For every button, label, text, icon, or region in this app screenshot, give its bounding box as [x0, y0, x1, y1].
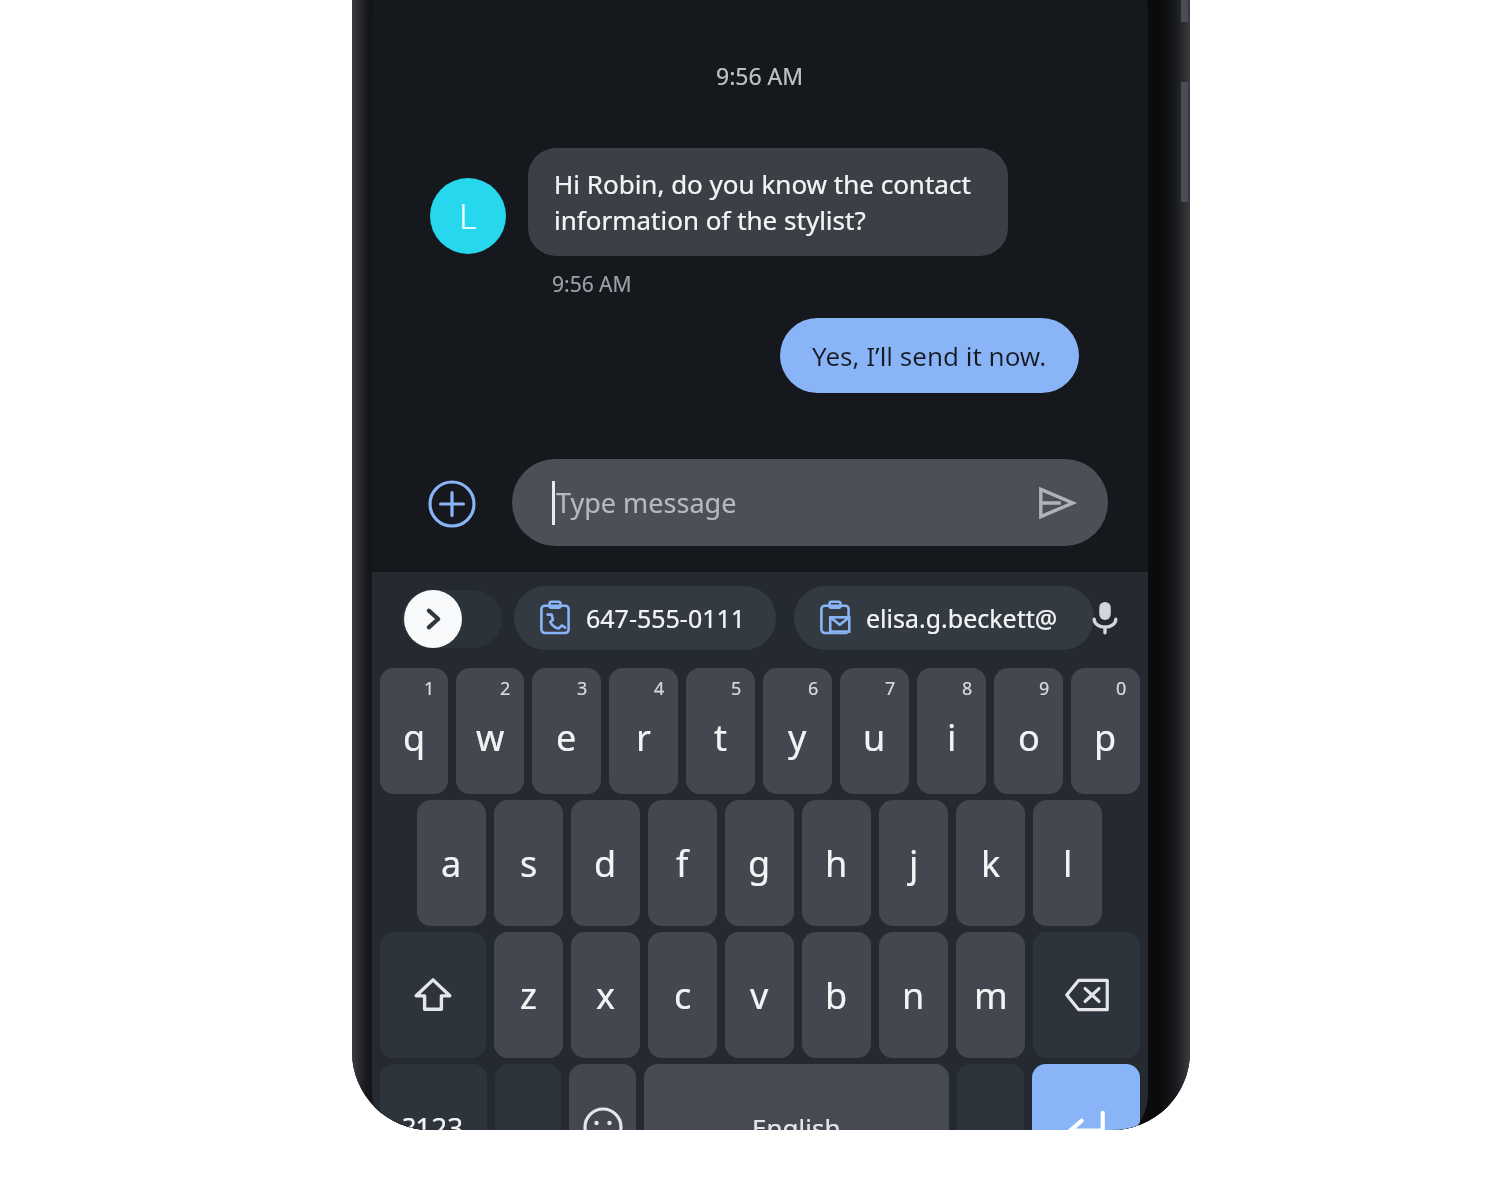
staticText: w [476, 713, 505, 762]
button[interactable]: 0 [1071, 668, 1140, 794]
staticText: 6 [808, 676, 819, 701]
button[interactable]: 3 [532, 668, 601, 794]
button[interactable]: j [879, 800, 948, 926]
staticText: i [947, 713, 957, 762]
staticText: n [902, 971, 925, 1020]
staticText: p [1094, 713, 1117, 762]
staticText: 3 [577, 676, 588, 701]
staticText: t [714, 713, 727, 762]
staticText: ?123 [403, 1108, 464, 1130]
button[interactable]: a [417, 800, 486, 926]
staticText: z [520, 971, 537, 1020]
staticText: v [750, 971, 769, 1020]
staticText: d [594, 839, 617, 888]
button[interactable]: L [430, 178, 506, 254]
staticText: f [676, 839, 689, 888]
button[interactable]: Emoji [569, 1064, 636, 1130]
staticText: 9 [1039, 676, 1050, 701]
staticText: 0 [1116, 676, 1127, 701]
staticText: o [1018, 713, 1040, 762]
staticText: h [825, 839, 848, 888]
button[interactable]: x [571, 932, 640, 1058]
button[interactable]: Backspace [1033, 932, 1140, 1058]
button[interactable]: b [802, 932, 871, 1058]
staticText: Type message [556, 484, 737, 521]
button[interactable]: m [956, 932, 1025, 1058]
button[interactable]: Shift [380, 932, 486, 1058]
button[interactable]: Hi Robin, do you know the contact inform… [528, 148, 1008, 256]
button[interactable]: 4 [609, 668, 678, 794]
button[interactable]: l [1033, 800, 1102, 926]
staticText: c [674, 971, 692, 1020]
button[interactable]: ?123 [380, 1064, 487, 1130]
staticText: r [636, 713, 651, 762]
button[interactable]: f [648, 800, 717, 926]
button[interactable]: c [648, 932, 717, 1058]
staticText: 647-555-0111 [586, 601, 746, 635]
staticText: L [459, 193, 477, 239]
button[interactable]: Send [1030, 477, 1082, 529]
button[interactable]: z [494, 932, 563, 1058]
button[interactable]: 9 [994, 668, 1063, 794]
button[interactable]: Type message [512, 459, 1108, 546]
staticText: 2 [500, 676, 511, 701]
staticText: q [403, 713, 426, 762]
staticText: u [863, 713, 886, 762]
button[interactable]: 647-555-0111 [514, 586, 776, 650]
staticText: 4 [654, 676, 665, 701]
button[interactable]: Expand suggestions [404, 590, 462, 648]
button[interactable]: h [802, 800, 871, 926]
button[interactable]: g [725, 800, 794, 926]
button[interactable]: n [879, 932, 948, 1058]
staticText: Hi Robin, do you know the contact inform… [554, 166, 971, 238]
button[interactable]: 5 [686, 668, 755, 794]
staticText: elisa.g.beckett@ [866, 601, 1058, 635]
staticText: g [748, 839, 771, 888]
button[interactable]: d [571, 800, 640, 926]
button[interactable]: v [725, 932, 794, 1058]
button[interactable]: 8 [917, 668, 986, 794]
staticText: English [752, 1110, 841, 1130]
staticText: 7 [885, 676, 896, 701]
button[interactable]: s [494, 800, 563, 926]
staticText: k [981, 839, 1001, 888]
staticText: y [788, 713, 807, 762]
staticText: s [520, 839, 538, 888]
staticText: a [441, 839, 462, 888]
button[interactable]: Yes, I’ll send it now. [780, 318, 1079, 393]
staticText: l [1063, 839, 1073, 888]
button[interactable]: k [956, 800, 1025, 926]
button[interactable]: Enter [1032, 1064, 1140, 1130]
staticText: Yes, I’ll send it now. [812, 338, 1047, 373]
button[interactable]: 2 [456, 668, 524, 794]
button[interactable]: 1 [380, 668, 448, 794]
button[interactable]: 7 [840, 668, 909, 794]
staticText: x [596, 971, 616, 1020]
staticText: e [556, 713, 577, 762]
button[interactable]: Voice input [1076, 588, 1134, 646]
button[interactable]: Add attachment [428, 480, 476, 528]
staticText: 1 [424, 676, 435, 701]
staticText: j [909, 839, 919, 888]
staticText: m [974, 971, 1008, 1020]
button[interactable]: 6 [763, 668, 832, 794]
staticText: 9:56 AM [552, 270, 632, 299]
staticText: 8 [962, 676, 973, 701]
staticText: 9:56 AM [716, 60, 804, 91]
staticText: b [825, 971, 848, 1020]
button[interactable]: English [644, 1064, 949, 1130]
button[interactable]: elisa.g.beckett@ [794, 586, 1094, 650]
staticText: 5 [731, 676, 742, 701]
